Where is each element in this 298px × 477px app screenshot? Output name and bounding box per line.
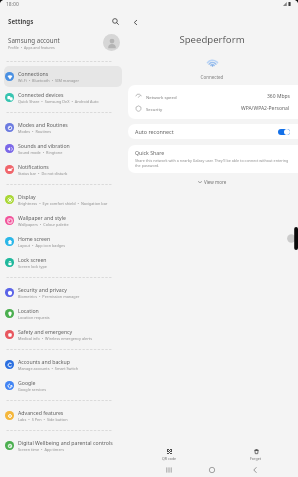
staticText: Digital Wellbeing and parental controls [18,439,113,446]
staticText: 360 Mbps [267,93,290,100]
button[interactable]: Back [129,16,141,28]
staticText: Connections [18,70,49,77]
staticText: Modes • Routines [18,129,52,134]
button[interactable]: Display [4,189,122,210]
staticText: Advanced features [18,409,64,416]
staticText: Settings [8,17,34,25]
staticText: Notifications [18,163,49,170]
button[interactable]: Auto reconnect [128,124,298,139]
staticText: Safety and emergency [18,328,73,335]
button[interactable]: Connected devices [4,87,122,108]
staticText: Connected devices [18,91,64,98]
staticText: Share this network with a nearby Galaxy … [135,158,293,168]
button[interactable]: Forget [244,448,268,462]
staticText: 18:00 [6,1,19,8]
staticText: Layout • App icon badges [18,243,66,248]
button[interactable]: Location [4,303,122,324]
staticText: Security [146,106,163,112]
button[interactable]: Digital Wellbeing and parental controls [4,435,122,456]
staticText: Quick Share [135,149,165,156]
staticText: Speedperform [126,33,298,46]
staticText: Sound mode • Ringtone [18,150,63,155]
staticText: Screen lock type [18,264,47,269]
staticText: WPA/WPA2-Personal [241,105,290,112]
staticText: Lock screen [18,256,47,263]
button[interactable]: Edge panel [286,227,298,250]
staticText: Screen time • App timers [18,447,64,452]
staticText: Google [18,379,36,386]
button[interactable]: Home screen [4,231,122,252]
button[interactable]: Advanced features [4,405,122,426]
staticText: Wi-Fi • Bluetooth • SIM manager [18,78,80,83]
staticText: Location requests [18,315,50,320]
staticText: Brightness • Eye comfort shield • Naviga… [18,201,108,206]
staticText: QR code [162,456,177,461]
staticText: Medical info • Wireless emergency alerts [18,336,92,341]
staticText: Auto reconnect [135,128,174,135]
button[interactable]: Sounds and vibration [4,138,122,159]
button[interactable]: Quick Share [128,145,298,173]
staticText: Status bar • Do not disturb [18,171,68,176]
staticText: Accounts and backup [18,358,70,365]
button[interactable]: Safety and emergency [4,324,122,345]
staticText: Quick Share • Samsung DeX • Android Auto [18,99,99,104]
staticText: Wallpaper and style [18,214,66,221]
staticText: Home screen [18,235,51,242]
staticText: Location [18,307,39,314]
button[interactable]: Recents [161,463,177,477]
button[interactable]: Home [204,463,220,477]
button[interactable]: QR code [156,448,183,462]
staticText: Labs • S Pen • Side button [18,417,68,422]
staticText: View more [204,179,227,185]
button[interactable]: Connections [4,66,122,87]
staticText: Security and privacy [18,286,67,293]
staticText: Biometrics • Permission manager [18,294,80,299]
staticText: Connected [126,74,298,80]
button[interactable]: View more [126,177,298,187]
staticText: Samsung account [8,36,60,44]
staticText: Sounds and vibration [18,142,70,149]
button[interactable]: Wallpaper and style [4,210,122,231]
button[interactable]: Security and privacy [4,282,122,303]
staticText: Display [18,193,36,200]
button[interactable]: Samsung account [0,28,126,57]
staticText: Wallpapers • Colour palette [18,222,69,227]
staticText: Modes and Routines [18,121,68,128]
button[interactable]: Notifications [4,159,122,180]
button[interactable]: Google [4,375,122,396]
button[interactable]: Modes and Routines [4,117,122,138]
staticText: Forget [250,456,262,461]
button[interactable]: Accounts and backup [4,354,122,375]
button[interactable]: Search [108,14,122,28]
staticText: Manage accounts • Smart Switch [18,366,79,371]
staticText: Profile • Apps and features [8,45,55,50]
staticText: Network speed [146,94,177,100]
button[interactable]: Back [247,463,263,477]
staticText: Google services [18,387,47,392]
button[interactable]: Lock screen [4,252,122,273]
